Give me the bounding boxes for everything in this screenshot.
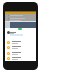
button[interactable] xyxy=(5,50,36,56)
button[interactable] xyxy=(5,39,36,45)
button[interactable] xyxy=(5,44,36,50)
button[interactable] xyxy=(18,28,22,30)
button[interactable] xyxy=(5,55,36,61)
